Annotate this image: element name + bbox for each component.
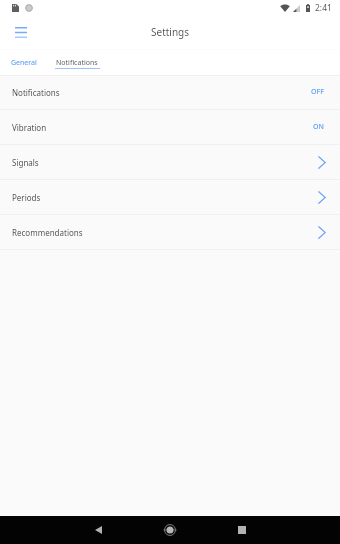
staticText: ON <box>313 122 324 132</box>
button[interactable]: Recommendations <box>0 215 340 249</box>
button[interactable]: Signals <box>0 145 340 179</box>
staticText: Settings <box>151 25 190 39</box>
button[interactable]: Recent apps <box>224 516 260 544</box>
staticText: Vibration <box>12 122 47 133</box>
button[interactable]: General <box>4 50 44 75</box>
button[interactable]: Vibration <box>0 110 340 144</box>
staticText: OFF <box>311 87 324 97</box>
staticText: Signals <box>12 157 39 168</box>
button[interactable]: Notifications <box>51 50 103 69</box>
button[interactable]: Periods <box>0 180 340 214</box>
staticText: 2:41 <box>315 2 332 14</box>
staticText: Notifications <box>56 58 98 68</box>
staticText: Periods <box>12 192 41 203</box>
button[interactable]: Notifications <box>0 75 340 109</box>
button[interactable]: Open navigation menu <box>0 16 42 49</box>
button[interactable]: Back <box>80 516 116 544</box>
staticText: Recommendations <box>12 227 83 238</box>
staticText: General <box>11 58 37 67</box>
staticText: Notifications <box>12 87 60 98</box>
button[interactable]: Home <box>152 516 188 544</box>
